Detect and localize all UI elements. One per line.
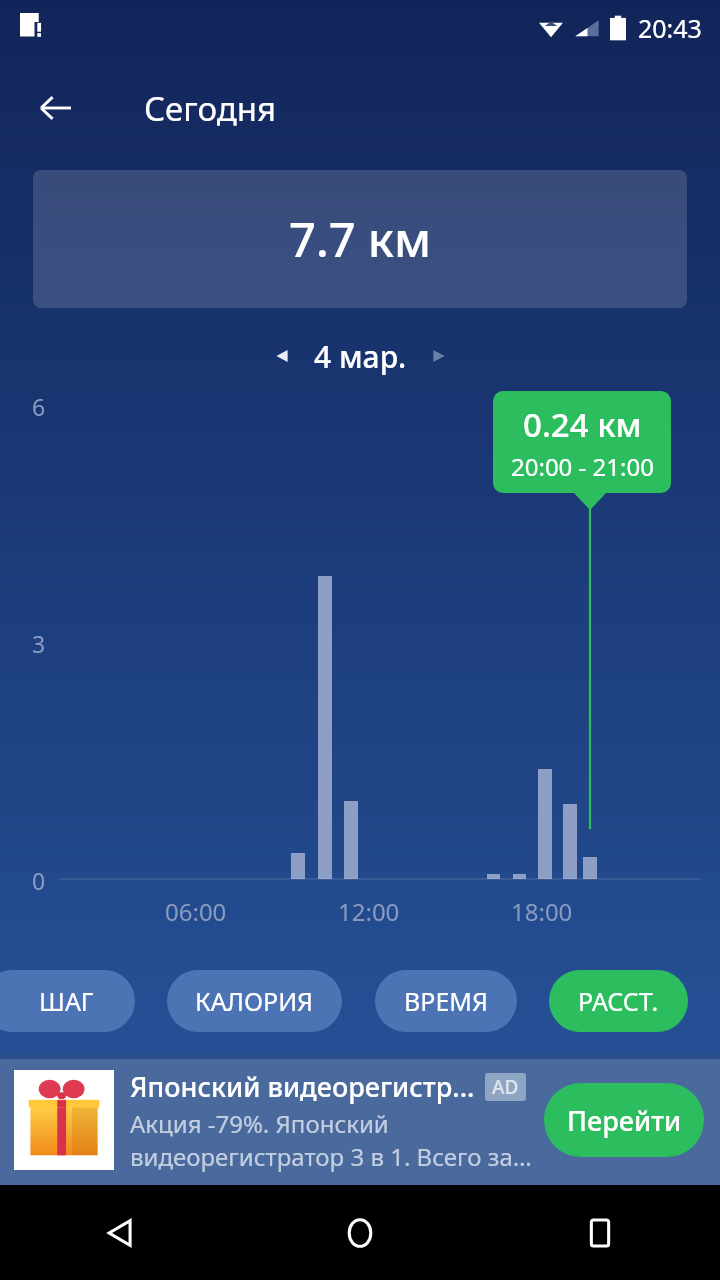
staticText: 0	[32, 865, 46, 896]
staticText: видеорегистратор 3 в 1. Всего за…	[130, 1140, 532, 1173]
button[interactable]: Японский видеорегистр...	[0, 1055, 720, 1185]
staticText: Японский видеорегистр...	[130, 1068, 475, 1105]
button[interactable]: Перейти	[544, 1083, 704, 1157]
staticText: ВРЕМЯ	[404, 984, 488, 1018]
staticText: Сегодня	[144, 86, 277, 131]
staticText: ШАГ	[39, 984, 94, 1018]
button[interactable]: Back	[0, 1185, 240, 1280]
button[interactable]: Previous day	[260, 334, 304, 378]
staticText: 4 мар.	[314, 336, 407, 377]
button[interactable]: ВРЕМЯ	[375, 970, 517, 1032]
staticText: Акция -79%. Японский	[130, 1107, 389, 1140]
staticText: 12:00	[338, 895, 400, 928]
button[interactable]: Back	[24, 76, 88, 140]
staticText: РАССТ.	[578, 984, 659, 1018]
button[interactable]: 0.24 км	[493, 391, 671, 493]
staticText: 20:00 - 21:00	[511, 450, 654, 483]
staticText: AD	[492, 1074, 519, 1100]
button[interactable]: КАЛОРИЯ	[167, 970, 342, 1032]
button[interactable]: ШАГ	[0, 970, 135, 1032]
staticText: 3	[32, 628, 46, 659]
staticText: 6	[32, 391, 46, 422]
button[interactable]: Recent apps	[480, 1185, 720, 1280]
button[interactable]: Next day	[417, 334, 461, 378]
staticText: Перейти	[567, 1102, 682, 1139]
button[interactable]: РАССТ.	[549, 970, 688, 1032]
staticText: 18:00	[511, 895, 573, 928]
staticText: КАЛОРИЯ	[195, 984, 314, 1018]
button[interactable]: Home	[240, 1185, 480, 1280]
button[interactable]: 7.7 км	[33, 170, 687, 308]
staticText: 06:00	[165, 895, 227, 928]
staticText: 20:43	[638, 11, 702, 45]
staticText: 0.24 км	[523, 402, 642, 447]
staticText: 7.7 км	[289, 207, 431, 271]
